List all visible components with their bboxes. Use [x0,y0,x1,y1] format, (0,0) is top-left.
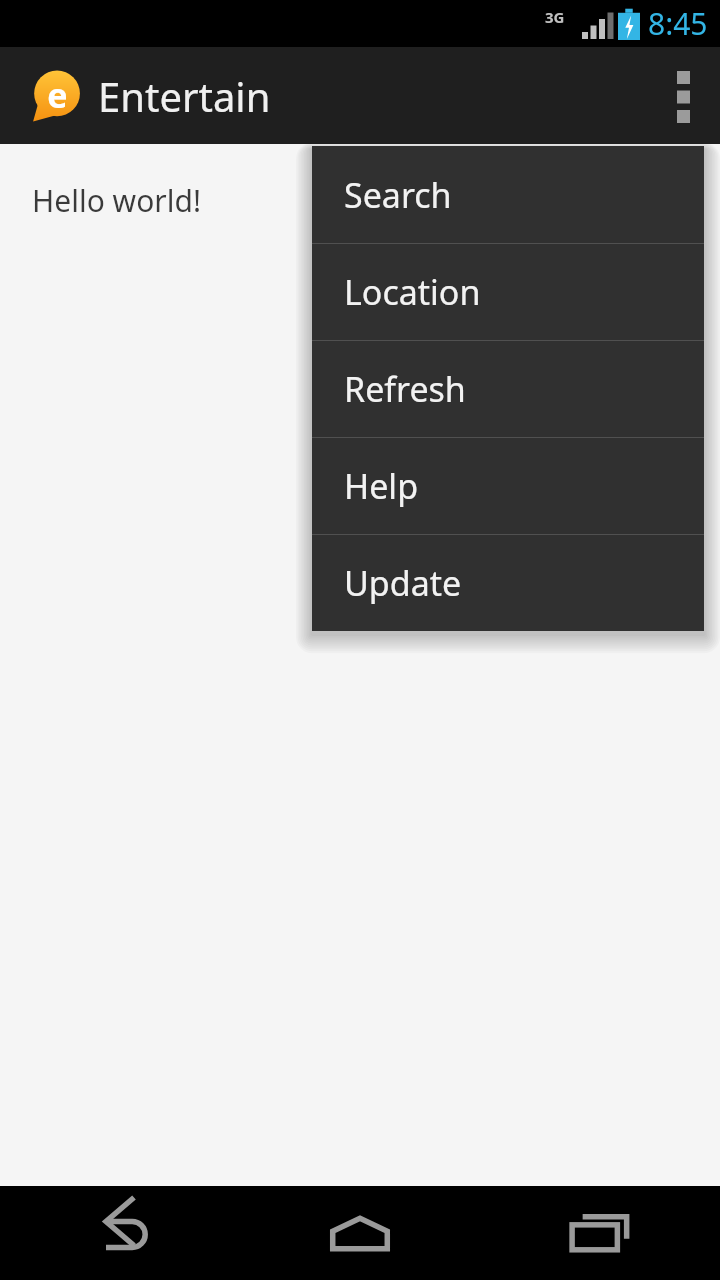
staticText: Hello world! [32,180,201,221]
staticText: Update [344,560,462,606]
staticText: e [47,72,68,118]
button[interactable]: Refresh [312,341,704,437]
staticText: Entertain [98,69,271,123]
button[interactable]: Recents [480,1186,720,1280]
button[interactable]: Back [0,1186,240,1280]
staticText: Help [344,463,419,509]
staticText: 3G [545,7,565,27]
button[interactable]: Location [312,244,704,340]
staticText: Refresh [344,366,466,412]
button[interactable]: Home [240,1186,480,1280]
button[interactable]: Search [312,146,704,243]
button[interactable]: Help [312,438,704,534]
button[interactable]: More options [648,47,720,144]
button[interactable]: Update [312,535,704,631]
staticText: Search [344,172,452,218]
staticText: 8:45 [648,3,708,44]
staticText: Location [344,269,481,315]
